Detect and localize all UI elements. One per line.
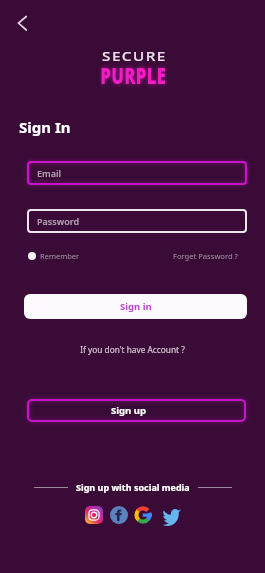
button[interactable]: Twitter [163,506,181,524]
staticText: Forget Password ? [173,251,238,261]
staticText: Remember [40,251,80,261]
staticText: SECURE [102,48,168,65]
button[interactable]: Email [27,161,247,185]
button[interactable]: Facebook [110,506,128,524]
button[interactable]: Forget Password ? [173,251,238,261]
button[interactable]: Sign in [24,294,247,319]
button[interactable]: Instagram [85,506,103,524]
button[interactable]: Sign up [27,399,246,422]
button[interactable]: Password [27,209,247,233]
button[interactable]: Remember [28,251,80,261]
button[interactable]: Google [134,506,152,524]
staticText: Sign in [120,300,152,313]
staticText: Email [37,167,62,179]
staticText: Sign up with social media [76,481,190,493]
staticText: Sign up [111,404,146,417]
staticText: If you don't have Account ? [80,344,185,355]
staticText: Sign In [19,117,71,137]
staticText: PURPLE [100,60,167,91]
staticText: Password [37,215,80,227]
staticText: PURPLE [100,60,167,91]
button[interactable]: Back [8,9,38,39]
